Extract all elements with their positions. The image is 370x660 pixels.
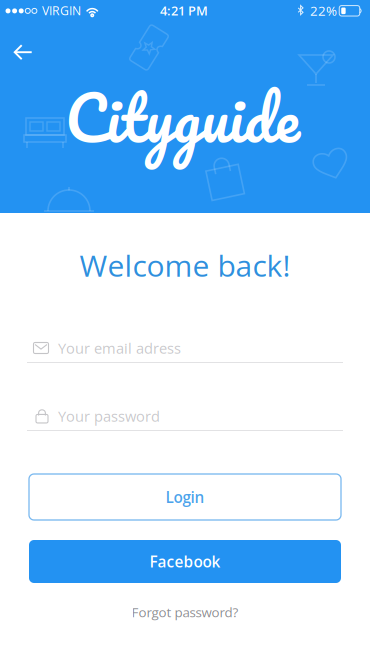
staticText: VIRGIN (42, 2, 81, 19)
staticText: Facebook (149, 551, 220, 572)
button[interactable]: Back (8, 35, 42, 69)
staticText: 22% (310, 1, 337, 20)
button[interactable]: Login (29, 474, 341, 520)
staticText: Forgot password? (131, 603, 238, 621)
staticText: Your email adress (58, 338, 181, 358)
staticText: Welcome back! (79, 245, 290, 285)
staticText: Login (165, 487, 204, 507)
button[interactable]: Facebook (29, 540, 341, 583)
staticText: 4:21 PM (160, 2, 208, 19)
staticText: Your password (58, 406, 160, 426)
button[interactable]: Forgot password? (115, 601, 255, 623)
staticText: Cityguide (65, 64, 300, 170)
